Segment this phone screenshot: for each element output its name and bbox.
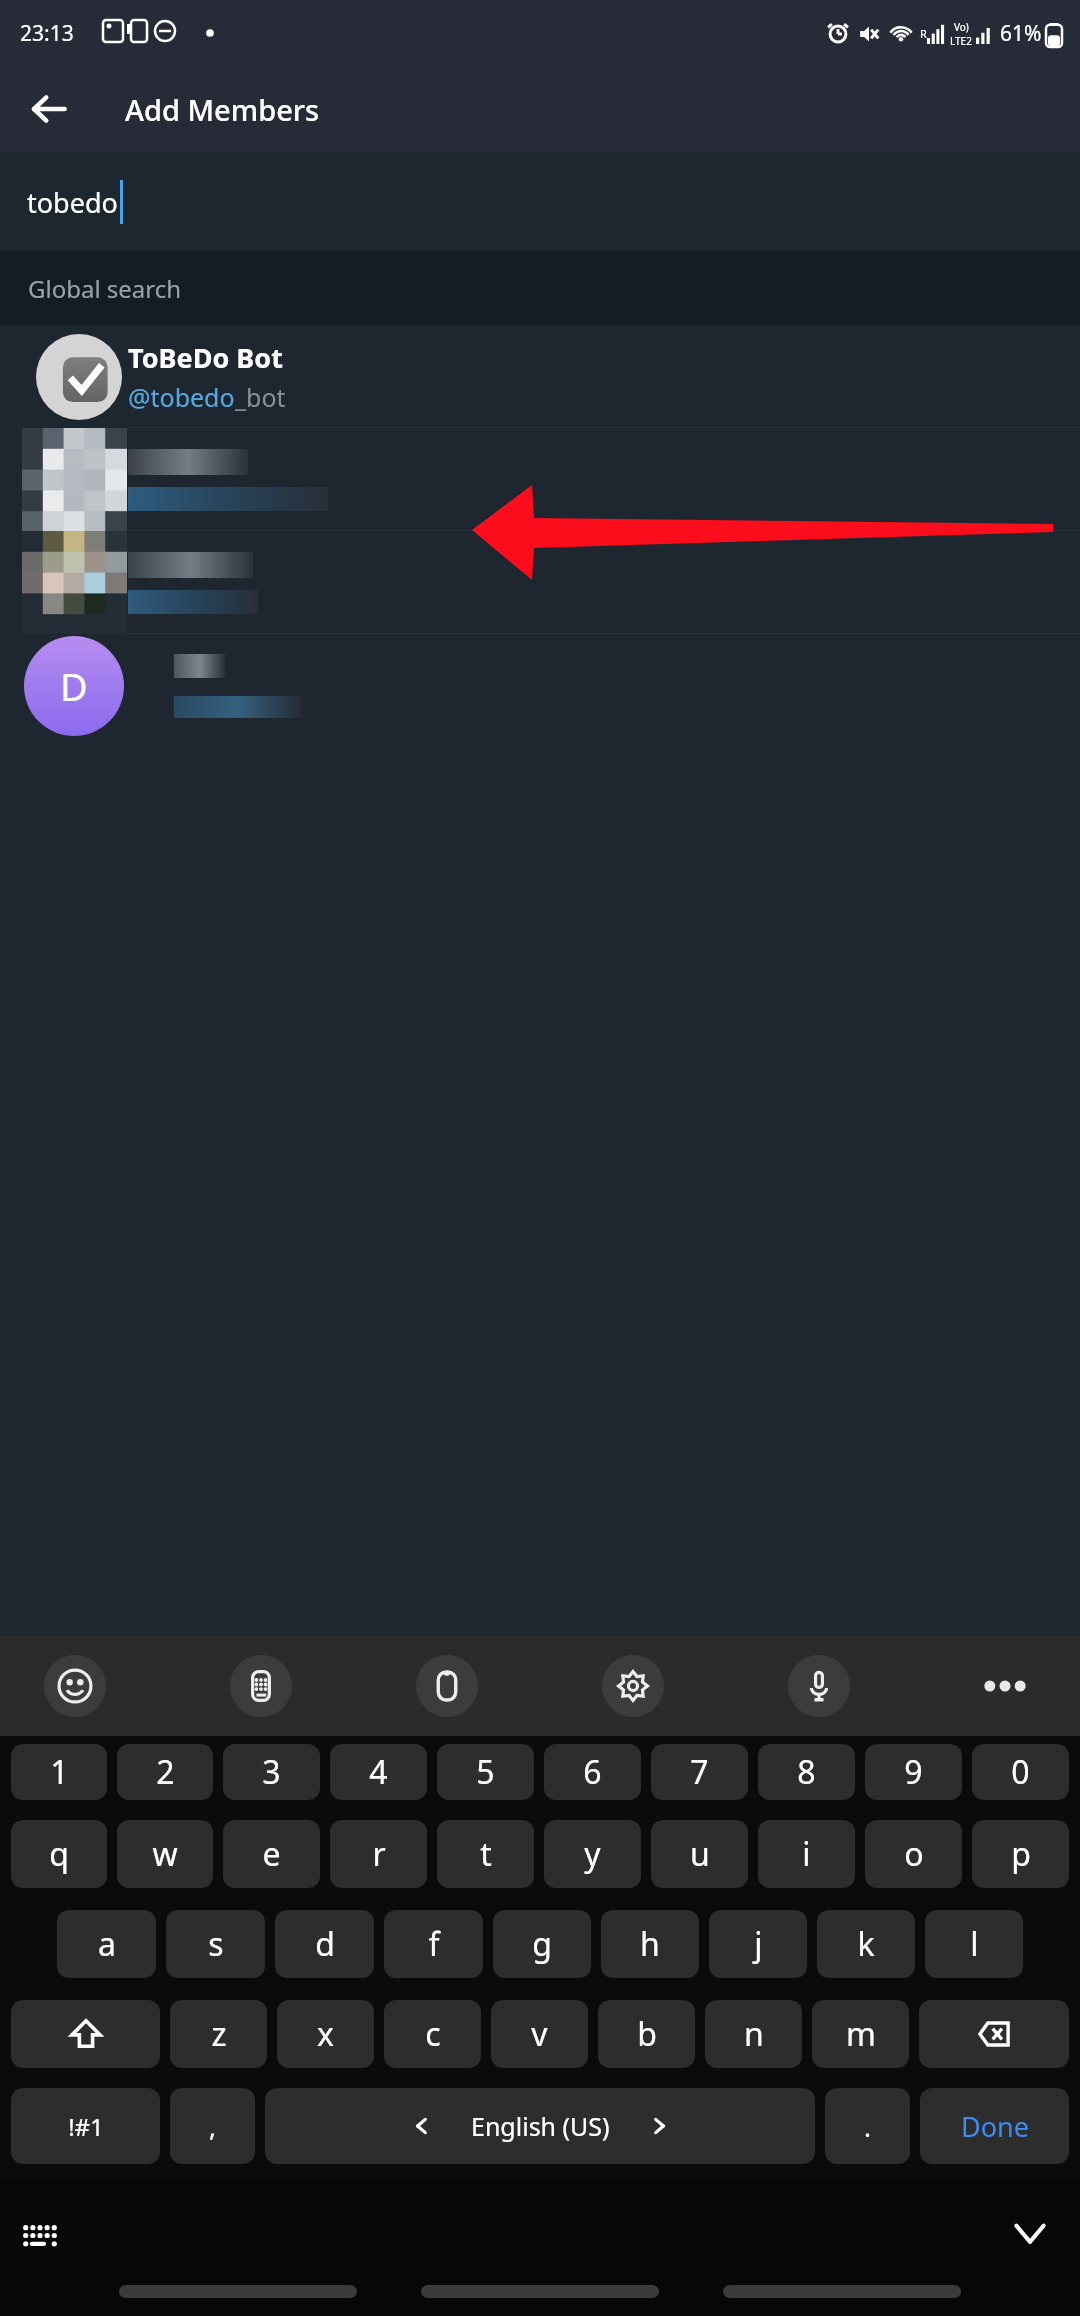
button[interactable]: 6	[544, 1744, 641, 1800]
staticText: k	[857, 1922, 875, 1966]
button[interactable]	[0, 531, 1080, 634]
button[interactable]: s	[166, 1910, 265, 1978]
button[interactable]: Settings	[602, 1655, 664, 1717]
button[interactable]: 4	[330, 1744, 427, 1800]
button[interactable]: .	[825, 2088, 910, 2164]
button[interactable]: j	[709, 1910, 807, 1978]
button[interactable]	[0, 428, 1080, 531]
button[interactable]: v	[491, 2000, 588, 2068]
staticText: z	[211, 2012, 227, 2056]
button[interactable]: Done	[920, 2088, 1069, 2164]
button[interactable]: e	[223, 1820, 320, 1888]
button[interactable]: i	[758, 1820, 855, 1888]
staticText: a	[98, 1922, 116, 1966]
staticText: 61%	[1000, 19, 1042, 48]
staticText: Add Members	[125, 90, 320, 129]
button[interactable]: Clipboard	[416, 1655, 478, 1717]
staticText: q	[49, 1832, 69, 1876]
button[interactable]: z	[170, 2000, 267, 2068]
staticText: w	[152, 1832, 178, 1876]
staticText: r	[372, 1832, 386, 1876]
staticText: o	[904, 1832, 924, 1876]
staticText: LTE2	[950, 34, 972, 48]
button[interactable]: 9	[865, 1744, 962, 1800]
staticText: Vo)	[954, 20, 969, 34]
staticText: d	[315, 1922, 335, 1966]
button[interactable]: D	[0, 634, 1080, 737]
button[interactable]: 3	[223, 1744, 320, 1800]
button[interactable]: Backspace	[919, 2000, 1069, 2068]
button[interactable]: 7	[651, 1744, 748, 1800]
staticText: ,	[209, 2109, 216, 2144]
button[interactable]: n	[705, 2000, 802, 2068]
staticText: i	[802, 1832, 811, 1876]
staticText: 8	[797, 1750, 816, 1794]
staticText: 4	[369, 1750, 388, 1794]
button[interactable]: More options	[974, 1655, 1036, 1717]
staticText: ToBeDo Bot	[128, 339, 283, 376]
button[interactable]: 8	[758, 1744, 855, 1800]
button[interactable]: x	[277, 2000, 374, 2068]
staticText: 3	[262, 1750, 281, 1794]
button[interactable]: Shift	[11, 2000, 160, 2068]
button[interactable]: Back	[14, 74, 84, 144]
button[interactable]: 0	[972, 1744, 1069, 1800]
staticText: Global search	[28, 272, 182, 305]
staticText: R	[920, 26, 927, 41]
staticText: n	[744, 2012, 764, 2056]
staticText: 0	[1011, 1750, 1030, 1794]
staticText: b	[637, 2012, 657, 2056]
button[interactable]: g	[493, 1910, 591, 1978]
button[interactable]: Emoji	[44, 1655, 106, 1717]
button[interactable]: Keyboard modes	[230, 1655, 292, 1717]
button[interactable]: !#1	[11, 2088, 160, 2164]
button[interactable]: Voice input	[788, 1655, 850, 1717]
button[interactable]: Switch keyboard	[14, 2210, 66, 2262]
staticText: 1	[50, 1750, 69, 1794]
button[interactable]: b	[598, 2000, 695, 2068]
staticText: p	[1011, 1832, 1031, 1876]
staticText: @tobedo	[128, 380, 235, 414]
staticText: v	[531, 2012, 548, 2056]
staticText: !#1	[68, 2110, 104, 2143]
staticText: e	[262, 1832, 281, 1876]
staticText: t	[480, 1832, 492, 1876]
staticText: tobedo	[27, 184, 118, 221]
button[interactable]: Hide keyboard	[1002, 2206, 1058, 2262]
button[interactable]: ToBeDo Bot	[0, 325, 1080, 428]
staticText: y	[584, 1832, 601, 1876]
button[interactable]: 2	[117, 1744, 213, 1800]
button[interactable]: h	[601, 1910, 699, 1978]
staticText: s	[208, 1922, 224, 1966]
button[interactable]: English (US)	[265, 2088, 815, 2164]
button[interactable]: k	[817, 1910, 915, 1978]
button[interactable]: p	[972, 1820, 1069, 1888]
button[interactable]: f	[384, 1910, 483, 1978]
staticText: l	[970, 1922, 979, 1966]
button[interactable]: ,	[170, 2088, 255, 2164]
button[interactable]: q	[11, 1820, 107, 1888]
button[interactable]: c	[384, 2000, 481, 2068]
button[interactable]: m	[812, 2000, 909, 2068]
staticText: 5	[476, 1750, 495, 1794]
button[interactable]: t	[437, 1820, 534, 1888]
button[interactable]: w	[117, 1820, 213, 1888]
staticText: 6	[583, 1750, 602, 1794]
staticText: English (US)	[471, 2109, 610, 2143]
button[interactable]: 5	[437, 1744, 534, 1800]
button[interactable]: r	[330, 1820, 427, 1888]
button[interactable]: d	[275, 1910, 374, 1978]
button[interactable]: u	[651, 1820, 748, 1888]
staticText: g	[532, 1922, 552, 1966]
button[interactable]: o	[865, 1820, 962, 1888]
button[interactable]: 1	[11, 1744, 107, 1800]
button[interactable]: a	[57, 1910, 156, 1978]
staticText: 7	[690, 1750, 709, 1794]
staticText: j	[754, 1922, 763, 1966]
staticText: .	[864, 2109, 871, 2144]
button[interactable]: l	[925, 1910, 1023, 1978]
staticText: u	[690, 1832, 710, 1876]
staticText: _bot	[235, 380, 286, 414]
button[interactable]: y	[544, 1820, 641, 1888]
staticText: D	[60, 660, 88, 712]
